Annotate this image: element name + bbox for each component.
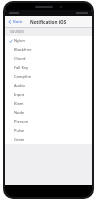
button[interactable]: Klam xyxy=(5,99,92,108)
staticText: Campfire xyxy=(14,74,32,79)
staticText: SOUNDS xyxy=(10,29,24,34)
button[interactable]: Blackfree xyxy=(5,45,92,54)
staticText: Grain xyxy=(14,137,25,142)
button[interactable]: Grain xyxy=(5,135,92,144)
button[interactable]: Pulse xyxy=(5,126,92,135)
staticText: Notification iOS xyxy=(30,19,67,25)
staticText: Node xyxy=(14,110,25,115)
staticText: Chord xyxy=(14,56,26,61)
staticText: Input xyxy=(14,92,25,97)
staticText: Pulse xyxy=(14,128,25,133)
staticText: Audio xyxy=(14,83,25,88)
staticText: Blackfree xyxy=(14,47,32,52)
button[interactable]: Pierson xyxy=(5,117,92,126)
button[interactable]: Back xyxy=(5,17,27,27)
staticText: Nylon xyxy=(14,38,26,43)
button[interactable]: Fall Key xyxy=(5,63,92,72)
button[interactable]: Chord xyxy=(5,54,92,63)
other: Selected xyxy=(9,39,13,43)
staticText: Pierson xyxy=(14,119,29,124)
button[interactable]: Input xyxy=(5,90,92,99)
button[interactable]: Node xyxy=(5,108,92,117)
staticText: Back xyxy=(13,19,23,25)
button[interactable]: Campfire xyxy=(5,72,92,81)
staticText: Klam xyxy=(14,101,24,106)
staticText: Fall Key xyxy=(14,65,29,70)
button[interactable]: Selected xyxy=(5,36,92,45)
button[interactable]: Audio xyxy=(5,81,92,90)
